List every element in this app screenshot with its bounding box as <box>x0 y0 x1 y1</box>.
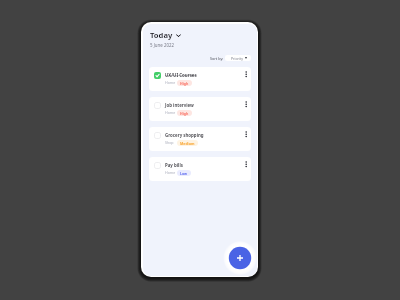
button[interactable]: Toggle Pay bills <box>149 157 251 181</box>
staticText: Home <box>165 80 176 85</box>
button[interactable]: Toggle Job interview <box>149 97 251 121</box>
staticText: Home <box>165 170 176 175</box>
button[interactable]: More options <box>239 69 249 89</box>
staticText: High <box>180 111 189 116</box>
staticText: UX/UI Courses <box>165 72 197 78</box>
button[interactable]: Toggle UX/UI Courses <box>149 67 251 91</box>
button[interactable]: Toggle Pay bills <box>154 162 161 169</box>
staticText: Shop <box>165 140 174 145</box>
button[interactable]: Change day <box>175 32 181 38</box>
staticText: Pay bills <box>165 162 183 168</box>
staticText: Sort by: <box>210 56 224 61</box>
button[interactable]: Toggle Grocery shopping <box>154 132 161 139</box>
button[interactable]: Add task <box>225 243 255 273</box>
button[interactable]: More options <box>239 99 249 119</box>
staticText: Priority <box>231 56 243 61</box>
staticText: 5 June 2022 <box>150 42 174 48</box>
staticText: High <box>180 81 189 86</box>
staticText: Low <box>180 171 188 176</box>
staticText: Home <box>165 110 176 115</box>
button[interactable]: Toggle Job interview <box>154 102 161 109</box>
button[interactable]: More options <box>239 129 249 149</box>
staticText: Today <box>150 30 173 40</box>
button[interactable]: Priority <box>225 55 251 61</box>
staticText: Medium <box>180 141 195 146</box>
staticText: Grocery shopping <box>165 132 204 138</box>
button[interactable]: Toggle UX/UI Courses <box>154 72 161 79</box>
button[interactable]: Toggle Grocery shopping <box>149 127 251 151</box>
button[interactable]: More options <box>239 159 249 179</box>
staticText: Job interview <box>165 102 194 108</box>
